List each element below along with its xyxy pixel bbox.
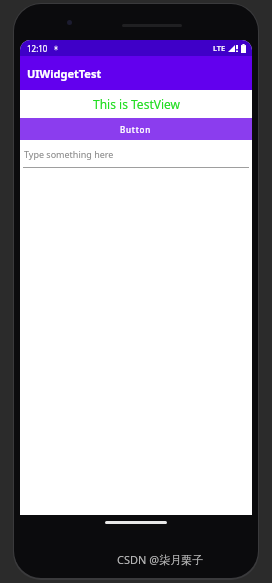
staticText: CSDN @柒月栗子 xyxy=(117,552,204,567)
staticText: UIWidgetTest xyxy=(27,66,102,81)
staticText: LTE xyxy=(213,43,226,53)
button[interactable]: UIWidgetTest xyxy=(20,56,252,90)
button[interactable]: Button xyxy=(20,118,252,140)
staticText: Type something here xyxy=(24,148,114,160)
staticText: 12:10 xyxy=(27,43,48,54)
staticText: Button xyxy=(120,124,152,135)
button[interactable]: Type something here xyxy=(20,140,252,170)
button[interactable]: Home xyxy=(105,521,167,524)
staticText: This is TestView xyxy=(93,96,180,112)
